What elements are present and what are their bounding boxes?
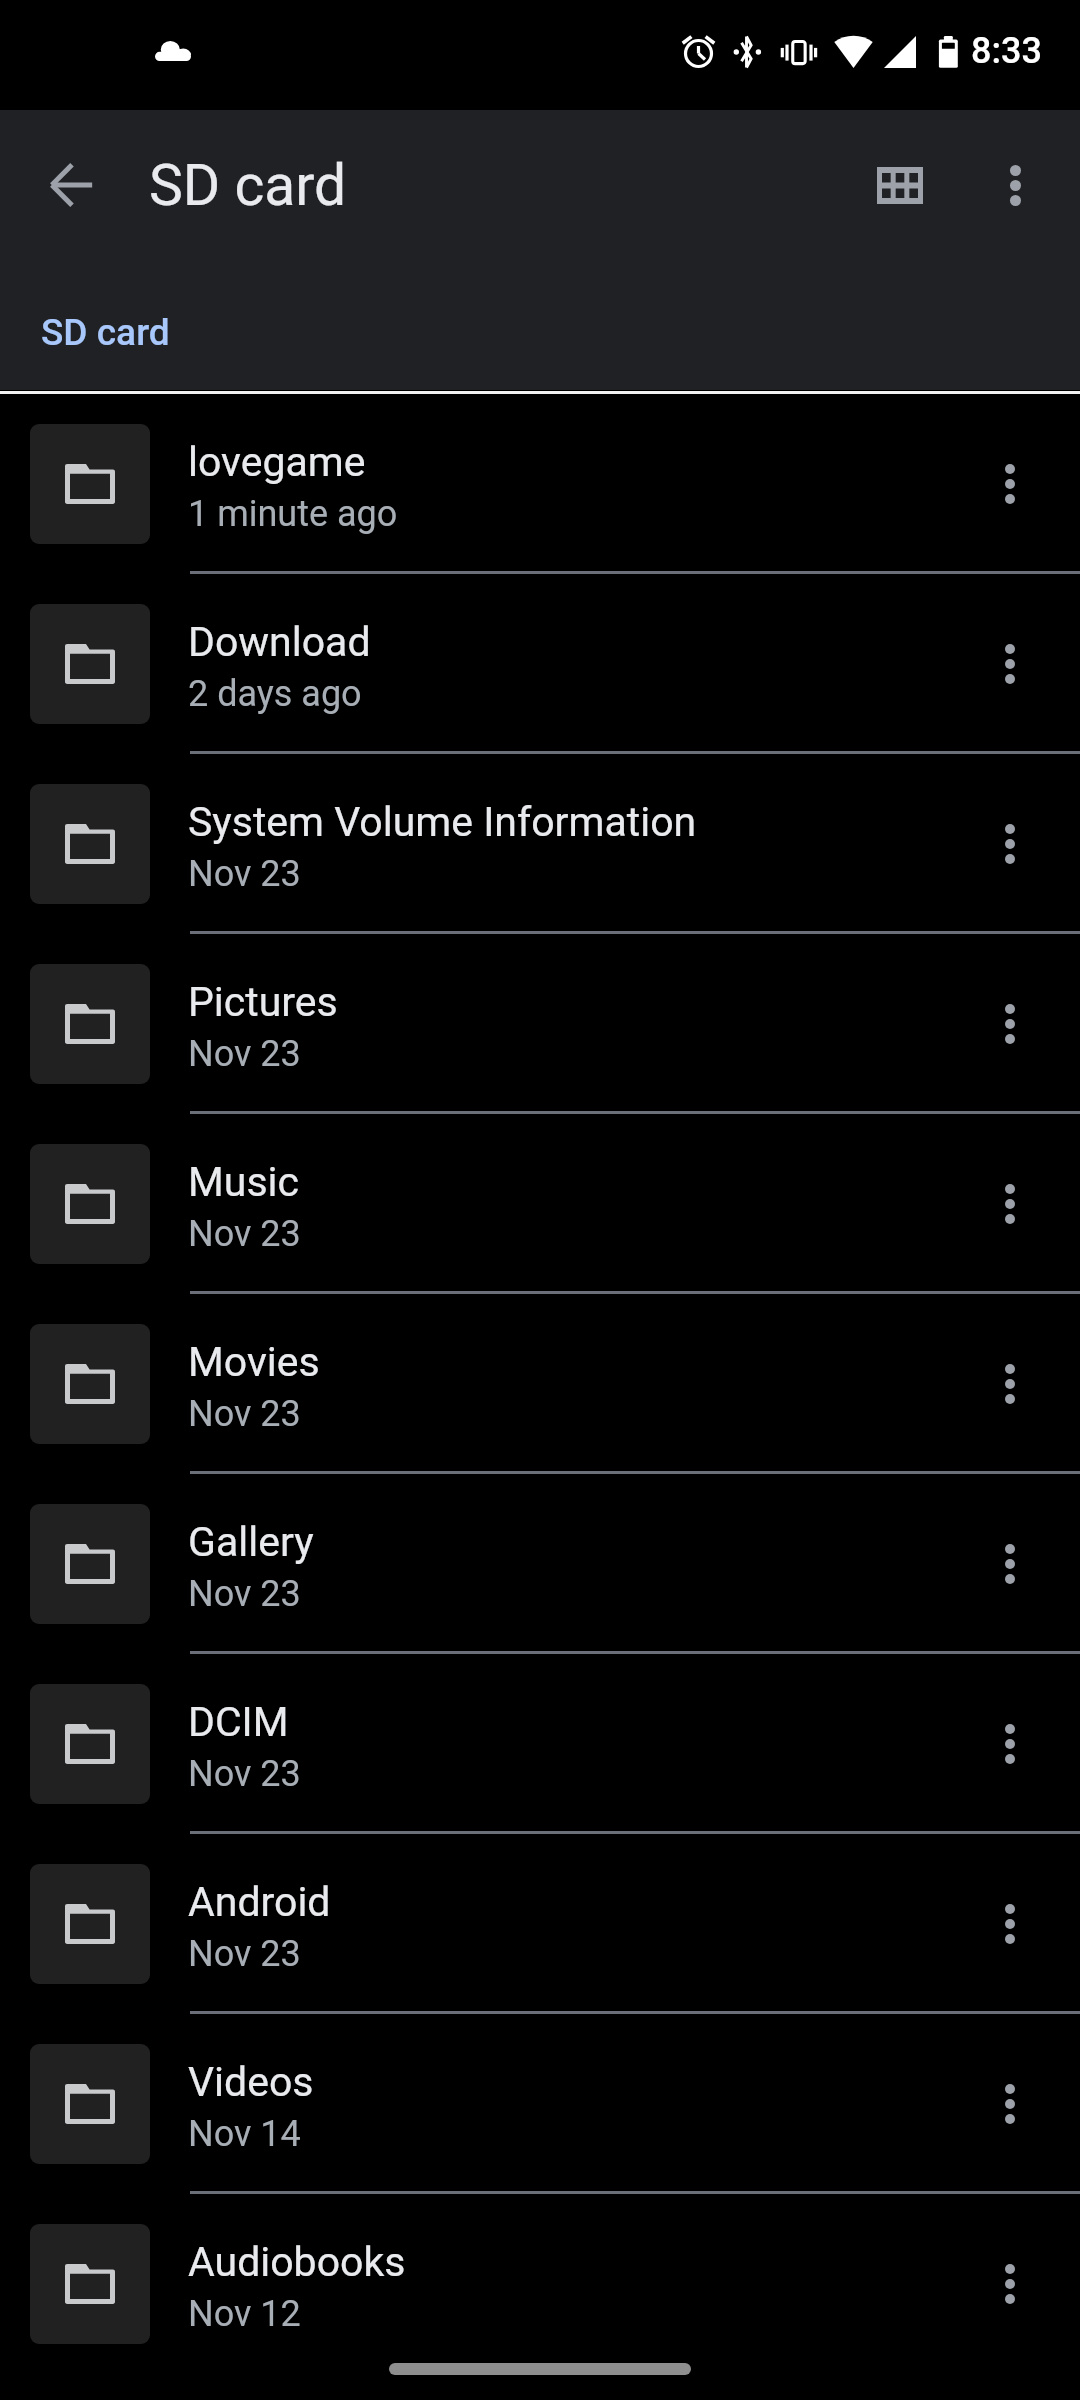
button[interactable]: More options [962,2236,1058,2332]
button[interactable]: Back [28,141,116,229]
staticText: Nov 23 [188,1213,301,1255]
button[interactable]: More options [962,1516,1058,1612]
staticText: Nov 23 [188,853,301,895]
staticText: 2 days ago [188,673,362,715]
button[interactable]: Download [0,574,1080,754]
staticText: SD card [41,311,170,354]
button[interactable]: More options [962,796,1058,892]
button[interactable]: Movies [0,1294,1080,1474]
staticText: Nov 23 [188,1933,301,1975]
staticText: Pictures [188,978,338,1026]
staticText: Nov 12 [188,2293,301,2335]
staticText: Nov 23 [188,1573,301,1615]
staticText: 8:33 [971,30,1042,72]
staticText: Videos [188,2058,314,2106]
staticText: lovegame [188,438,366,486]
staticText: Audiobooks [188,2238,406,2286]
button[interactable]: Gallery [0,1474,1080,1654]
button[interactable]: System Volume Information [0,754,1080,934]
button[interactable]: More options [962,2056,1058,2152]
button[interactable]: Grid view [852,137,948,233]
staticText: Nov 23 [188,1753,301,1795]
button[interactable]: More options [962,436,1058,532]
staticText: Gallery [188,1518,314,1566]
staticText: Nov 23 [188,1033,301,1075]
staticText: Movies [188,1338,320,1386]
button[interactable]: lovegame [0,394,1080,574]
button[interactable]: More options [962,1696,1058,1792]
button[interactable]: Videos [0,2014,1080,2194]
button[interactable]: More options [962,616,1058,712]
staticText: Download [188,618,371,666]
button[interactable]: Audiobooks [0,2194,1080,2374]
staticText: 1 minute ago [188,493,398,535]
button[interactable]: More options [967,137,1063,233]
staticText: Music [188,1158,299,1206]
button[interactable]: Pictures [0,934,1080,1114]
staticText: Android [188,1878,331,1926]
button[interactable]: More options [962,1156,1058,1252]
staticText: System Volume Information [188,798,697,846]
button[interactable]: More options [962,1336,1058,1432]
button[interactable]: DCIM [0,1654,1080,1834]
staticText: Nov 23 [188,1393,301,1435]
button[interactable]: More options [962,976,1058,1072]
button[interactable]: Android [0,1834,1080,2014]
button[interactable]: Music [0,1114,1080,1294]
staticText: SD card [149,152,347,219]
button[interactable]: SD card [21,297,190,368]
staticText: DCIM [188,1698,289,1746]
button[interactable]: More options [962,1876,1058,1972]
staticText: Nov 14 [188,2113,301,2155]
